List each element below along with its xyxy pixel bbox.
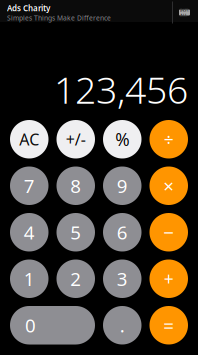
- button[interactable]: %: [103, 120, 141, 158]
- staticText: 1: [24, 266, 35, 291]
- staticText: %: [115, 128, 129, 151]
- staticText: 6: [117, 220, 128, 245]
- staticText: −: [163, 220, 174, 245]
- staticText: AC: [19, 129, 39, 150]
- button[interactable]: 8: [56, 166, 95, 205]
- staticText: +: [164, 267, 174, 290]
- staticText: =: [163, 313, 174, 338]
- staticText: .: [120, 313, 125, 338]
- button[interactable]: .: [103, 306, 141, 344]
- staticText: +/-: [66, 129, 86, 150]
- button[interactable]: 2: [56, 259, 95, 298]
- button[interactable]: 0: [10, 306, 95, 344]
- staticText: 3: [117, 266, 128, 291]
- staticText: 7: [24, 173, 35, 198]
- staticText: 4: [24, 220, 35, 245]
- staticText: ×: [163, 173, 174, 198]
- button[interactable]: AC: [10, 120, 48, 158]
- staticText: 123,456: [54, 64, 188, 114]
- button[interactable]: ×: [149, 166, 188, 205]
- button[interactable]: =: [149, 306, 188, 344]
- button[interactable]: 7: [10, 166, 48, 205]
- button[interactable]: 9: [103, 166, 141, 205]
- button[interactable]: 1: [10, 259, 48, 298]
- button[interactable]: −: [149, 213, 188, 251]
- staticText: 9: [117, 173, 128, 198]
- staticText: 2: [70, 266, 81, 291]
- button[interactable]: 6: [103, 213, 141, 251]
- button[interactable]: ÷: [149, 120, 188, 158]
- button[interactable]: 4: [10, 213, 48, 251]
- button[interactable]: +: [149, 259, 188, 298]
- staticText: 5: [70, 220, 81, 245]
- button[interactable]: 5: [56, 213, 95, 251]
- staticText: Ads Charity: [7, 3, 50, 13]
- staticText: Simples Things Make Difference: [7, 13, 111, 22]
- staticText: INSTALL: [180, 7, 189, 18]
- staticText: ÷: [164, 128, 174, 151]
- staticText: 0: [25, 313, 36, 338]
- button[interactable]: 3: [103, 259, 141, 298]
- button[interactable]: +/-: [56, 120, 95, 158]
- staticText: 8: [70, 173, 81, 198]
- button[interactable]: Advertisement: Ads Charity: [0, 0, 198, 22]
